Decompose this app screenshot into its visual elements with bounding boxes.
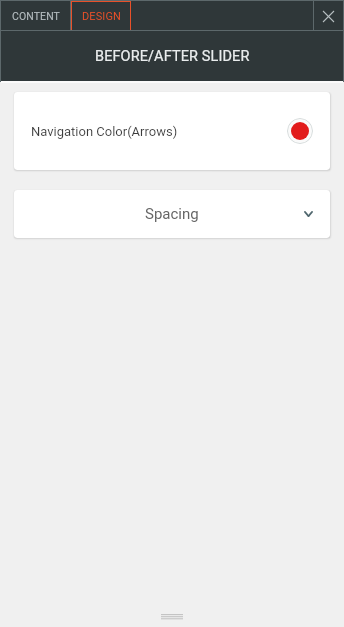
button[interactable]: Spacing (14, 190, 330, 238)
button[interactable]: Close (314, 1, 343, 31)
button[interactable]: Pick navigation color (287, 118, 313, 144)
button[interactable]: DESIGN (71, 1, 131, 31)
staticText: CONTENT (12, 10, 60, 22)
staticText: DESIGN (82, 10, 121, 23)
staticText: Spacing (145, 205, 199, 223)
button[interactable]: Resize panel (1, 607, 343, 627)
staticText: Navigation Color(Arrows) (31, 124, 178, 139)
staticText: BEFORE/AFTER SLIDER (95, 48, 250, 65)
button[interactable]: CONTENT (1, 1, 70, 31)
